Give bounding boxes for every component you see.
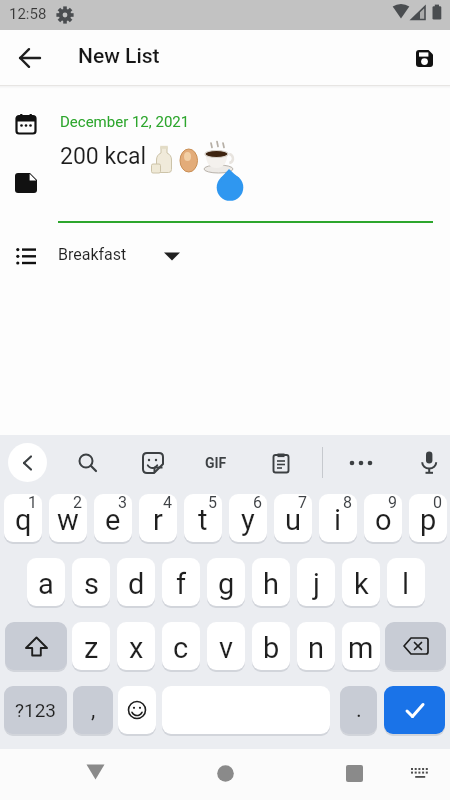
staticText: m bbox=[348, 631, 374, 665]
staticText: c bbox=[173, 631, 189, 665]
button[interactable] bbox=[139, 494, 177, 542]
button[interactable] bbox=[162, 558, 200, 606]
button[interactable] bbox=[8, 443, 47, 482]
button[interactable] bbox=[207, 622, 245, 670]
button[interactable] bbox=[72, 558, 110, 606]
staticText: 2 bbox=[73, 493, 82, 512]
button[interactable] bbox=[403, 37, 445, 79]
button[interactable] bbox=[4, 494, 42, 542]
staticText: 6 bbox=[253, 493, 262, 512]
staticText: 1 bbox=[28, 493, 37, 512]
button[interactable] bbox=[409, 443, 448, 482]
staticText: 200 kcal bbox=[60, 143, 147, 170]
button[interactable]: Breakfast bbox=[56, 240, 196, 274]
button[interactable] bbox=[184, 494, 222, 542]
staticText: GIF bbox=[205, 455, 227, 471]
staticText: 12:58 bbox=[9, 5, 47, 23]
staticText: , bbox=[91, 697, 96, 723]
button[interactable] bbox=[117, 622, 155, 670]
button[interactable]: 200 kcal bbox=[58, 140, 432, 224]
staticText: 5 bbox=[208, 493, 217, 512]
button[interactable] bbox=[342, 622, 380, 670]
staticText: n bbox=[308, 631, 325, 665]
button[interactable] bbox=[27, 558, 65, 606]
staticText: y bbox=[241, 503, 255, 537]
button[interactable] bbox=[319, 494, 357, 542]
button[interactable]: December 12, 2021 bbox=[58, 110, 428, 138]
staticText: t bbox=[198, 503, 208, 537]
staticText: b bbox=[263, 631, 280, 665]
button[interactable] bbox=[133, 443, 172, 482]
staticText: 0 bbox=[433, 493, 442, 512]
button[interactable] bbox=[203, 751, 247, 795]
button[interactable] bbox=[364, 494, 402, 542]
staticText: z bbox=[84, 631, 99, 665]
button[interactable] bbox=[261, 443, 301, 482]
button[interactable] bbox=[72, 622, 110, 670]
button[interactable] bbox=[252, 622, 290, 670]
button[interactable]: . bbox=[340, 686, 377, 734]
button[interactable] bbox=[73, 750, 117, 794]
button[interactable] bbox=[10, 38, 50, 78]
button[interactable] bbox=[94, 494, 132, 542]
staticText: 3 bbox=[118, 493, 127, 512]
button[interactable]: ?123 bbox=[4, 686, 67, 734]
staticText: h bbox=[263, 567, 279, 601]
staticText: p bbox=[420, 503, 437, 537]
button[interactable] bbox=[384, 686, 445, 734]
button[interactable] bbox=[162, 622, 200, 670]
staticText: r bbox=[153, 503, 163, 537]
staticText: Breakfast bbox=[58, 245, 127, 264]
staticText: f bbox=[176, 567, 187, 601]
staticText: q bbox=[15, 503, 32, 537]
staticText: o bbox=[375, 503, 392, 537]
button[interactable] bbox=[297, 558, 335, 606]
staticText: l bbox=[402, 567, 410, 601]
button[interactable] bbox=[5, 622, 67, 670]
button[interactable]: GIF bbox=[196, 443, 236, 482]
button[interactable] bbox=[341, 443, 381, 482]
button[interactable] bbox=[387, 558, 425, 606]
button[interactable] bbox=[342, 558, 380, 606]
button[interactable] bbox=[117, 558, 155, 606]
staticText: i bbox=[334, 503, 342, 537]
staticText: . bbox=[356, 697, 362, 723]
staticText: 7 bbox=[298, 493, 307, 512]
button[interactable] bbox=[406, 764, 434, 786]
button[interactable] bbox=[207, 558, 245, 606]
button[interactable] bbox=[385, 622, 446, 670]
staticText: v bbox=[219, 631, 234, 665]
staticText: e bbox=[105, 503, 121, 537]
staticText: December 12, 2021 bbox=[60, 113, 190, 131]
staticText: New List bbox=[78, 44, 160, 69]
button[interactable] bbox=[332, 751, 376, 795]
button[interactable] bbox=[118, 686, 156, 734]
button[interactable] bbox=[252, 558, 290, 606]
staticText: 4 bbox=[163, 493, 172, 512]
button[interactable] bbox=[229, 494, 267, 542]
staticText: k bbox=[354, 567, 369, 601]
staticText: 8 bbox=[343, 493, 352, 512]
button[interactable] bbox=[49, 494, 87, 542]
button[interactable] bbox=[297, 622, 335, 670]
staticText: a bbox=[38, 567, 54, 601]
staticText: w bbox=[57, 503, 79, 537]
staticText: g bbox=[218, 567, 235, 601]
button[interactable]: , bbox=[73, 686, 113, 734]
staticText: d bbox=[128, 567, 145, 601]
staticText: x bbox=[129, 631, 144, 665]
staticText: u bbox=[285, 503, 301, 537]
button[interactable] bbox=[274, 494, 312, 542]
staticText: 9 bbox=[388, 493, 397, 512]
staticText: j bbox=[313, 567, 320, 601]
staticText: s bbox=[84, 567, 99, 601]
staticText: ?123 bbox=[15, 699, 57, 721]
button[interactable] bbox=[68, 443, 107, 482]
button[interactable] bbox=[409, 494, 447, 542]
